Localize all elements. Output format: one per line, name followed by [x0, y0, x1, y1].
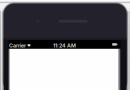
staticText: 11:24 AM [53, 42, 76, 49]
staticText: Carrier [9, 42, 26, 49]
